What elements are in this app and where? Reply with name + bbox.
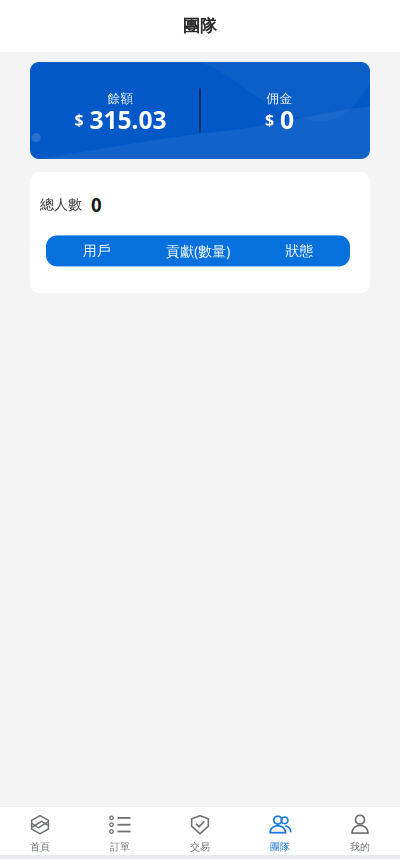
staticText: 交易 bbox=[190, 841, 210, 853]
staticText: $ bbox=[265, 109, 274, 130]
staticText: 總人數 bbox=[40, 196, 82, 213]
staticText: 貢獻(數量) bbox=[166, 241, 230, 260]
button[interactable]: 團隊 bbox=[240, 803, 320, 859]
staticText: 0 bbox=[280, 103, 294, 136]
staticText: 我的 bbox=[350, 841, 370, 853]
button[interactable]: 我的 bbox=[320, 803, 400, 859]
staticText: $ bbox=[75, 109, 84, 130]
button[interactable]: 交易 bbox=[160, 803, 240, 859]
staticText: 佣金 bbox=[266, 90, 292, 106]
staticText: 狀態 bbox=[285, 242, 313, 260]
staticText: 團隊 bbox=[183, 15, 217, 36]
staticText: 首頁 bbox=[30, 841, 50, 853]
button[interactable]: 訂單 bbox=[80, 803, 160, 859]
button[interactable]: 首頁 bbox=[0, 803, 80, 859]
staticText: 315.03 bbox=[90, 103, 167, 136]
staticText: 餘額 bbox=[108, 90, 134, 106]
staticText: 訂單 bbox=[110, 841, 130, 853]
staticText: 團隊 bbox=[270, 841, 290, 853]
staticText: 0 bbox=[91, 192, 102, 217]
staticText: 用戶 bbox=[83, 242, 111, 260]
